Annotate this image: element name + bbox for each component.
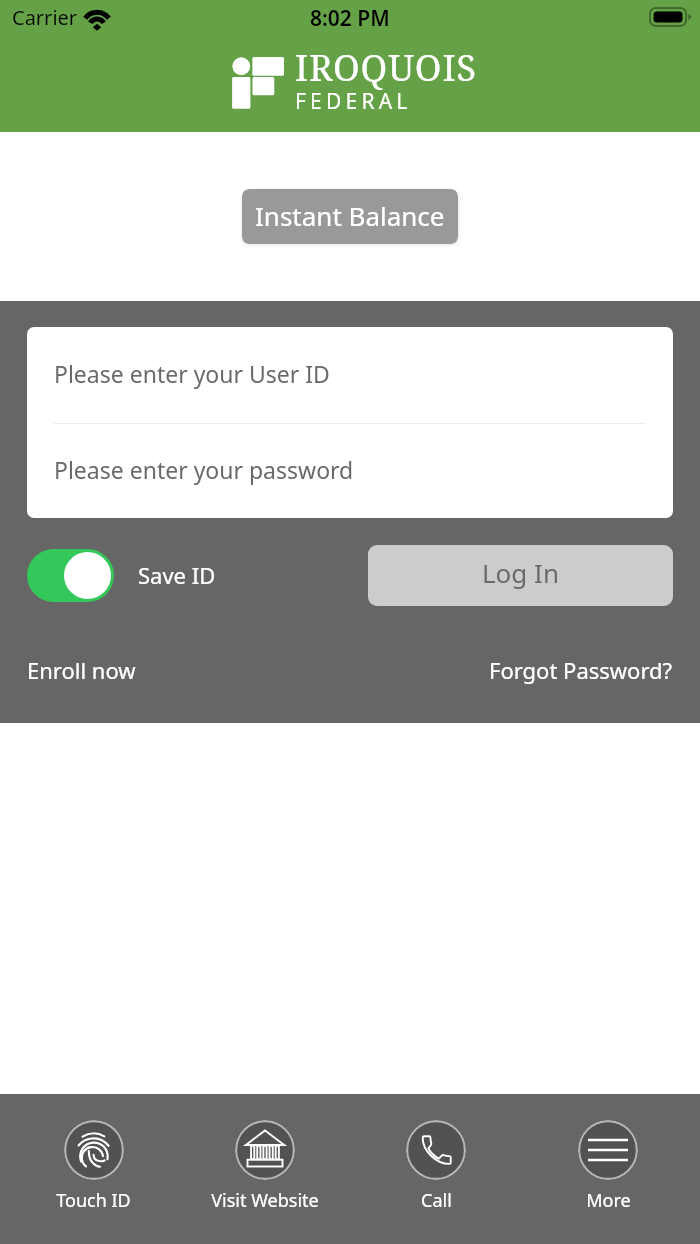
button[interactable]: Save ID toggle [27,549,114,602]
staticText: Instant Balance [255,198,445,233]
button[interactable]: More [522,1094,694,1213]
button[interactable]: Please enter your password [27,424,673,518]
button[interactable]: Log In [368,545,673,606]
staticText: FEDERAL [295,87,412,116]
button[interactable]: Please enter your User ID [27,327,673,423]
staticText: Please enter your User ID [54,358,330,389]
button[interactable]: Enroll now [27,655,136,685]
staticText: More [586,1188,631,1213]
staticText: Visit Website [211,1188,319,1213]
staticText: Carrier [12,4,78,31]
button[interactable]: Touch ID [8,1094,179,1213]
staticText: Forgot Password? [489,655,673,685]
button[interactable]: Call [350,1094,522,1213]
staticText: Touch ID [56,1188,131,1213]
staticText: IROQUOIS [295,43,478,92]
button[interactable]: Visit Website [179,1094,350,1213]
staticText: Save ID [138,560,216,590]
staticText: Log In [482,555,559,590]
staticText: Call [421,1188,452,1213]
button[interactable]: Instant Balance [242,189,458,244]
staticText: Please enter your password [54,454,354,485]
staticText: 8:02 PM [310,4,390,33]
button[interactable]: Forgot Password? [489,655,673,685]
staticText: Enroll now [27,655,136,685]
